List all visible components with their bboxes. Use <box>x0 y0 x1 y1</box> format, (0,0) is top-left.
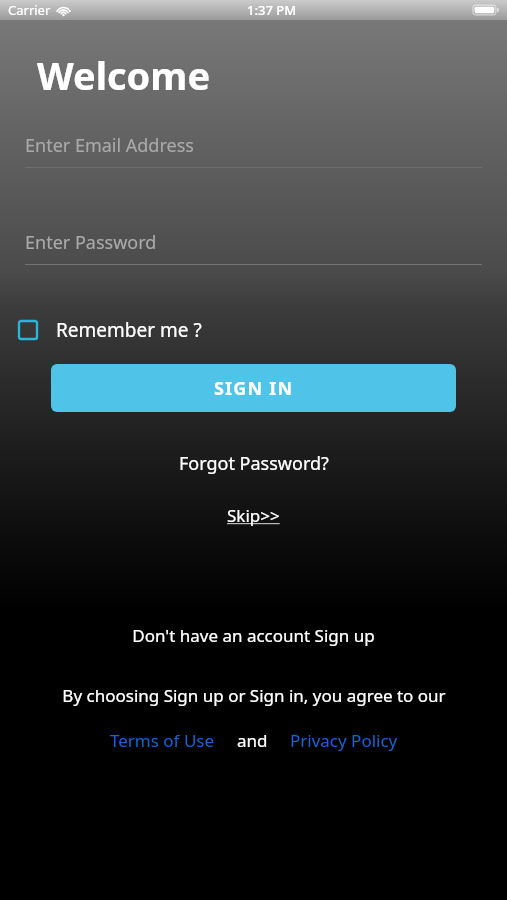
staticText: Terms of Use <box>110 729 215 752</box>
button[interactable]: Skip>> <box>219 502 288 529</box>
staticText: 1:37 PM <box>247 1 297 19</box>
staticText: SIGN IN <box>214 376 294 401</box>
staticText: Forgot Password? <box>179 451 329 476</box>
staticText: Carrier <box>8 1 51 19</box>
staticText: Welcome <box>37 49 211 101</box>
staticText: Enter Password <box>25 230 157 255</box>
button[interactable]: Privacy Policy <box>286 727 402 754</box>
staticText: Don't have an account Sign up <box>132 624 375 647</box>
button[interactable]: Enter Email Address <box>25 133 482 168</box>
staticText: Remember me ? <box>56 317 202 343</box>
button[interactable]: Don't have an account Sign up <box>124 622 383 649</box>
staticText: Skip>> <box>227 504 280 527</box>
button[interactable]: SIGN IN <box>51 364 456 412</box>
button[interactable]: Remember me ? <box>19 313 210 347</box>
button[interactable]: Terms of Use <box>106 727 219 754</box>
button[interactable]: Enter Password <box>25 230 482 265</box>
staticText: Privacy Policy <box>290 729 398 752</box>
button[interactable]: Forgot Password? <box>171 449 337 478</box>
staticText: and <box>237 729 268 752</box>
staticText: Enter Email Address <box>25 133 194 158</box>
staticText: By choosing Sign up or Sign in, you agre… <box>62 684 446 707</box>
